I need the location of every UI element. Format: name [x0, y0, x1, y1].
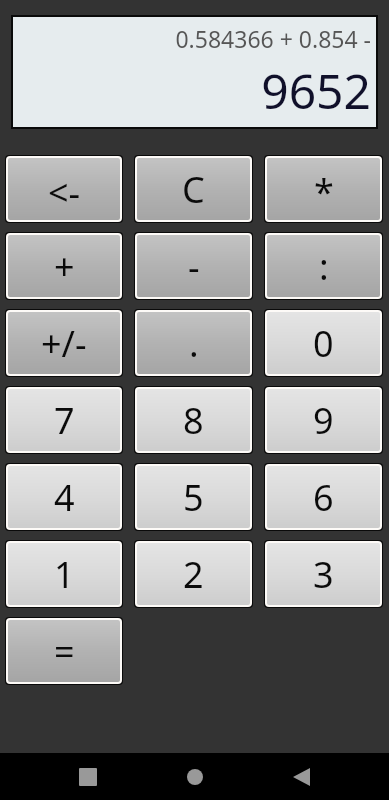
button[interactable]: <- [8, 158, 120, 220]
button[interactable]: Back [248, 753, 355, 800]
staticText: . [189, 319, 199, 368]
button[interactable]: : [267, 235, 380, 297]
staticText: C [182, 165, 205, 214]
staticText: 0 [313, 319, 334, 368]
button[interactable]: C [137, 158, 250, 220]
button[interactable]: 7 [8, 389, 120, 451]
button[interactable]: 2 [137, 543, 250, 605]
button[interactable]: 6 [267, 466, 380, 528]
staticText: 0.584366 + 0.854 - [175, 23, 371, 54]
button[interactable]: Home [141, 753, 248, 800]
button[interactable]: +/- [8, 312, 120, 374]
button[interactable]: 3 [267, 543, 380, 605]
staticText: 3 [313, 550, 334, 599]
staticText: = [54, 627, 75, 676]
staticText: +/- [41, 319, 87, 368]
button[interactable]: * [267, 158, 380, 220]
staticText: 4 [54, 473, 75, 522]
button[interactable]: = [8, 620, 120, 682]
button[interactable]: 4 [8, 466, 120, 528]
staticText: 7 [54, 396, 75, 445]
staticText: : [319, 242, 329, 291]
staticText: <- [48, 168, 81, 217]
staticText: - [188, 242, 200, 291]
staticText: 9652 [261, 58, 371, 123]
staticText: 8 [183, 396, 204, 445]
staticText: 6 [313, 473, 334, 522]
button[interactable]: 8 [137, 389, 250, 451]
button[interactable]: 5 [137, 466, 250, 528]
button[interactable]: 1 [8, 543, 120, 605]
staticText: 9 [313, 396, 334, 445]
staticText: 5 [183, 473, 204, 522]
button[interactable]: 9 [267, 389, 380, 451]
staticText: 2 [183, 550, 204, 599]
staticText: * [314, 167, 334, 216]
button[interactable]: Recent apps [34, 753, 141, 800]
staticText: 1 [54, 550, 75, 599]
button[interactable]: - [137, 235, 250, 297]
button[interactable]: . [137, 312, 250, 374]
button[interactable]: + [8, 235, 120, 297]
staticText: + [54, 242, 75, 291]
button[interactable]: 0 [267, 312, 380, 374]
